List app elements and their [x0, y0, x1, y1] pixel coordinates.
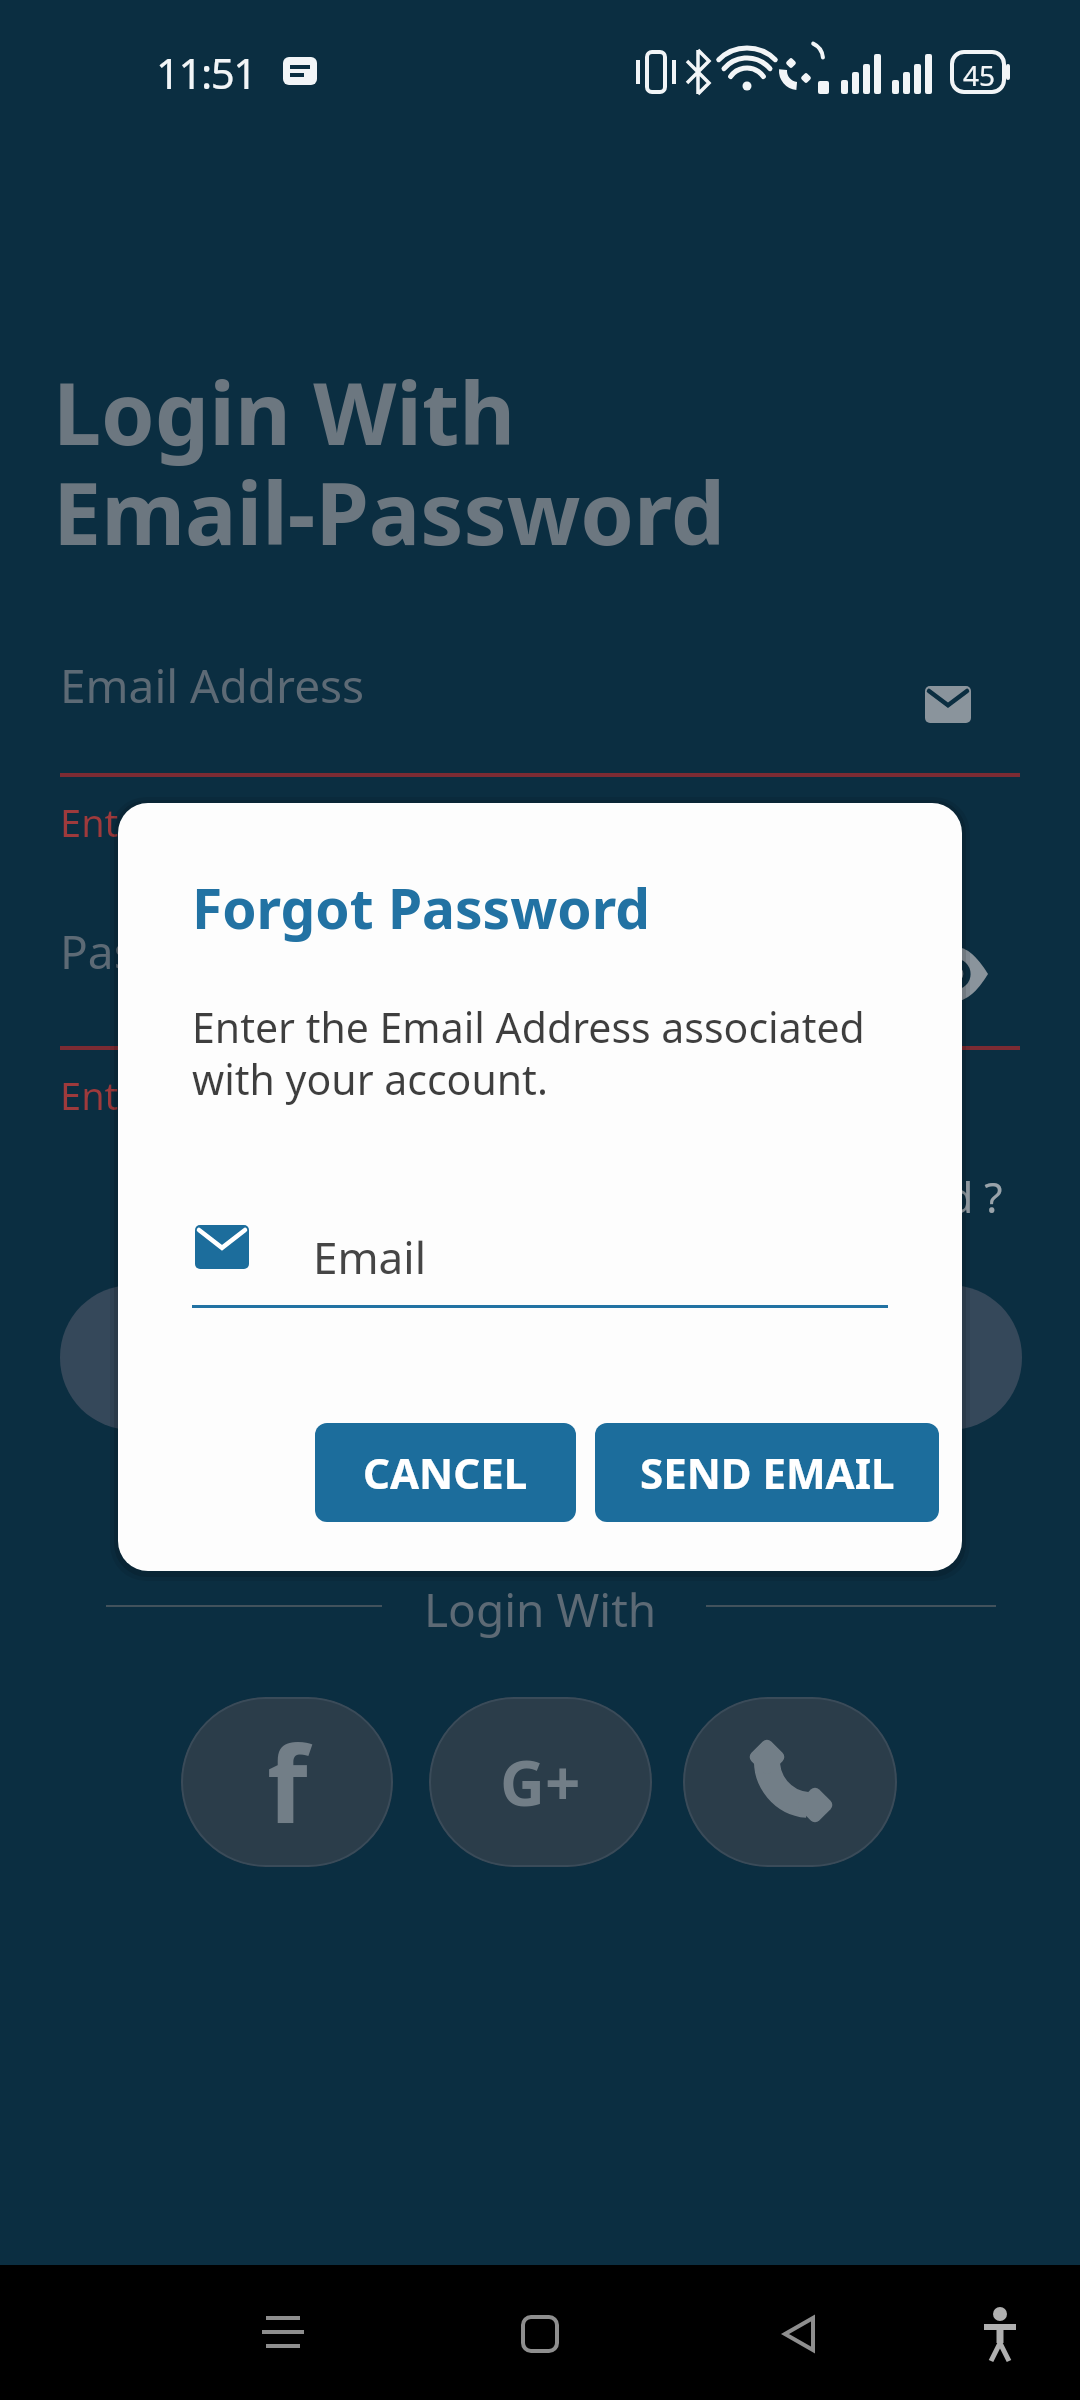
staticText: Login With	[424, 1578, 657, 1638]
button[interactable]: SEND EMAIL	[595, 1423, 939, 1522]
staticText: Enter Valid Password	[60, 1069, 434, 1121]
button[interactable]	[60, 1285, 1022, 1430]
button[interactable]: G+	[429, 1697, 652, 1867]
staticText: G+	[500, 1740, 581, 1824]
staticText: Enter the Email Address associated	[192, 999, 865, 1055]
staticText: Forgot Password ?	[642, 1168, 1003, 1218]
staticText: Forgot Password	[192, 870, 650, 945]
button[interactable]: CANCEL	[315, 1423, 576, 1522]
staticText: f	[267, 1711, 308, 1854]
button[interactable]: f	[181, 1697, 393, 1867]
staticText: 11:51	[156, 44, 256, 101]
staticText: Email-Password	[53, 453, 726, 570]
staticText: 45	[963, 56, 996, 94]
staticText: Password	[60, 920, 269, 983]
staticText: with your account.	[192, 1051, 548, 1107]
button[interactable]	[683, 1697, 897, 1867]
staticText: Enter Valid Email Address	[60, 796, 513, 848]
staticText: Login With	[53, 353, 516, 470]
staticText: CANCEL	[363, 1444, 528, 1501]
staticText: SEND EMAIL	[640, 1444, 895, 1501]
staticText: Email	[313, 1227, 426, 1287]
staticText: Email Address	[60, 654, 365, 717]
